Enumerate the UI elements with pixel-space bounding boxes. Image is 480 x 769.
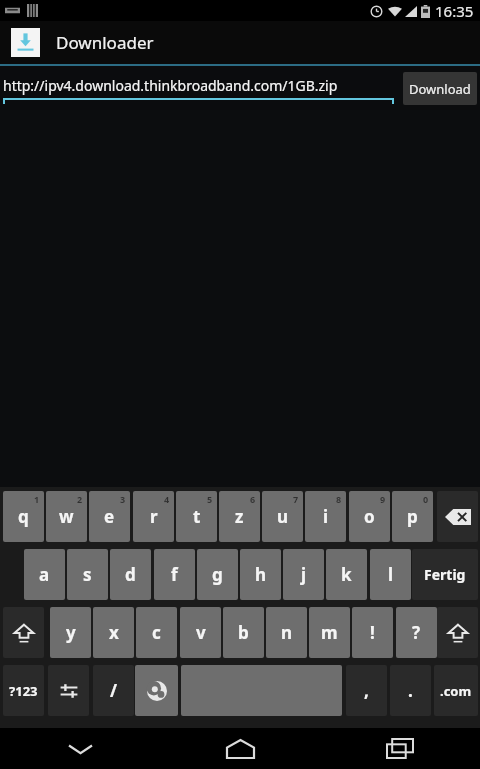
button[interactable]: d bbox=[110, 549, 151, 600]
button[interactable]: Shift bbox=[437, 607, 478, 658]
button[interactable]: Keyboard settings bbox=[48, 665, 89, 716]
staticText: t bbox=[193, 505, 201, 528]
button[interactable]: .com bbox=[434, 665, 478, 716]
button[interactable]: p bbox=[392, 491, 433, 542]
staticText: c bbox=[152, 621, 161, 644]
button[interactable]: x bbox=[93, 607, 134, 658]
staticText: , bbox=[364, 679, 369, 702]
staticText: f bbox=[171, 563, 178, 586]
button[interactable]: Recent apps bbox=[320, 728, 480, 769]
staticText: j bbox=[301, 563, 307, 586]
staticText: 7 bbox=[293, 493, 299, 505]
staticText: Fertig bbox=[424, 565, 466, 584]
staticText: d bbox=[125, 563, 136, 586]
staticText: r bbox=[150, 505, 158, 528]
button[interactable]: Fertig bbox=[412, 549, 478, 600]
button[interactable]: n bbox=[266, 607, 307, 658]
staticText: g bbox=[212, 563, 223, 586]
staticText: x bbox=[109, 621, 119, 644]
button[interactable]: j bbox=[283, 549, 324, 600]
button[interactable]: y bbox=[50, 607, 91, 658]
button[interactable]: Change language bbox=[135, 665, 178, 716]
staticText: z bbox=[235, 505, 244, 528]
button[interactable]: l bbox=[370, 549, 411, 600]
button[interactable]: m bbox=[309, 607, 350, 658]
staticText: 16:35 bbox=[435, 1, 474, 21]
button[interactable]: k bbox=[326, 549, 367, 600]
staticText: .com bbox=[440, 682, 472, 700]
button[interactable]: ?123 bbox=[3, 665, 44, 716]
staticText: 0 bbox=[423, 493, 429, 505]
staticText: 9 bbox=[380, 493, 386, 505]
button[interactable]: c bbox=[136, 607, 177, 658]
button[interactable]: Hide keyboard bbox=[0, 728, 160, 769]
button[interactable]: Download bbox=[403, 72, 477, 105]
staticText: m bbox=[321, 621, 338, 644]
staticText: k bbox=[341, 563, 352, 586]
button[interactable]: g bbox=[197, 549, 238, 600]
button[interactable]: b bbox=[223, 607, 264, 658]
staticText: 3 bbox=[120, 493, 126, 505]
button[interactable]: h bbox=[240, 549, 281, 600]
staticText: Downloader bbox=[56, 31, 154, 54]
button[interactable]: Home bbox=[160, 728, 320, 769]
button[interactable]: http://ipv4.download.thinkbroadband.com/… bbox=[3, 72, 394, 104]
button[interactable]: e bbox=[89, 491, 130, 542]
staticText: s bbox=[83, 563, 92, 586]
button[interactable]: v bbox=[180, 607, 221, 658]
staticText: b bbox=[238, 621, 249, 644]
staticText: http://ipv4.download.thinkbroadband.com/… bbox=[3, 76, 338, 95]
staticText: . bbox=[408, 679, 413, 702]
button[interactable]: s bbox=[67, 549, 108, 600]
button[interactable]: Delete bbox=[437, 491, 478, 542]
button[interactable]: w bbox=[46, 491, 87, 542]
staticText: / bbox=[110, 679, 118, 702]
staticText: u bbox=[277, 505, 289, 528]
staticText: n bbox=[281, 621, 293, 644]
button[interactable]: u bbox=[262, 491, 303, 542]
staticText: p bbox=[407, 505, 418, 528]
staticText: v bbox=[196, 621, 206, 644]
staticText: 1 bbox=[34, 493, 40, 505]
button[interactable]: r bbox=[133, 491, 174, 542]
button[interactable]: q bbox=[3, 491, 44, 542]
staticText: w bbox=[59, 505, 74, 528]
staticText: i bbox=[323, 505, 329, 528]
staticText: o bbox=[364, 505, 375, 528]
staticText: 5 bbox=[207, 493, 213, 505]
staticText: 6 bbox=[250, 493, 256, 505]
staticText: 4 bbox=[164, 493, 170, 505]
button[interactable]: , bbox=[346, 665, 387, 716]
button[interactable]: ? bbox=[396, 607, 437, 658]
staticText: l bbox=[388, 563, 394, 586]
staticText: ?123 bbox=[9, 682, 38, 700]
staticText: ! bbox=[370, 621, 375, 644]
staticText: e bbox=[104, 505, 115, 528]
button[interactable]: Shift bbox=[3, 607, 44, 658]
staticText: 2 bbox=[77, 493, 83, 505]
button[interactable]: / bbox=[93, 665, 134, 716]
staticText: a bbox=[39, 563, 50, 586]
staticText: h bbox=[255, 563, 267, 586]
staticText: Download bbox=[409, 80, 471, 98]
button[interactable]: f bbox=[154, 549, 195, 600]
button[interactable]: o bbox=[349, 491, 390, 542]
button[interactable]: a bbox=[24, 549, 65, 600]
staticText: ? bbox=[412, 621, 421, 644]
staticText: q bbox=[18, 505, 29, 528]
button[interactable]: t bbox=[176, 491, 217, 542]
button[interactable]: z bbox=[219, 491, 260, 542]
staticText: 8 bbox=[336, 493, 342, 505]
staticText: y bbox=[66, 621, 76, 644]
button[interactable]: i bbox=[305, 491, 346, 542]
button[interactable]: ! bbox=[352, 607, 393, 658]
button[interactable]: . bbox=[390, 665, 431, 716]
